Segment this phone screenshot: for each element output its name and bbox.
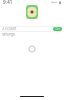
button[interactable]: Account	[0, 26, 64, 31]
staticText: 9:41	[3, 0, 12, 5]
staticText: ••• ▮	[51, 0, 61, 5]
staticText: Settings	[2, 32, 15, 37]
button[interactable]: Settings	[0, 32, 64, 37]
staticText: Account	[2, 27, 16, 31]
staticText: Get	[55, 27, 60, 31]
